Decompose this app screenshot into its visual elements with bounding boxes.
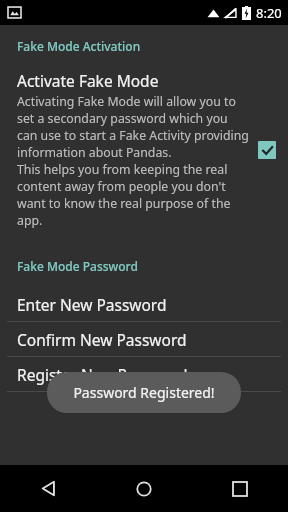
button[interactable]: Back [0, 465, 96, 512]
button[interactable]: Activate Fake Mode checkbox [258, 141, 276, 159]
staticText: Password Registered! [73, 383, 215, 402]
staticText: Fake Mode Activation [17, 38, 141, 54]
button[interactable]: Register New Password [0, 357, 288, 391]
button[interactable]: Activate Fake Mode [0, 69, 288, 235]
staticText: Enter New Password [17, 294, 167, 315]
staticText: Activating Fake Mode will allow you to s… [17, 93, 250, 229]
button[interactable]: Home [96, 465, 192, 512]
staticText: Fake Mode Password [17, 258, 138, 274]
button[interactable]: Recent apps [192, 465, 288, 512]
staticText: 8:20 [256, 4, 282, 22]
staticText: Confirm New Password [17, 329, 187, 350]
staticText: Register New Password [17, 364, 188, 385]
staticText: Activate Fake Mode [17, 70, 159, 91]
button[interactable]: Enter New Password [0, 287, 288, 321]
button[interactable]: Confirm New Password [0, 322, 288, 356]
